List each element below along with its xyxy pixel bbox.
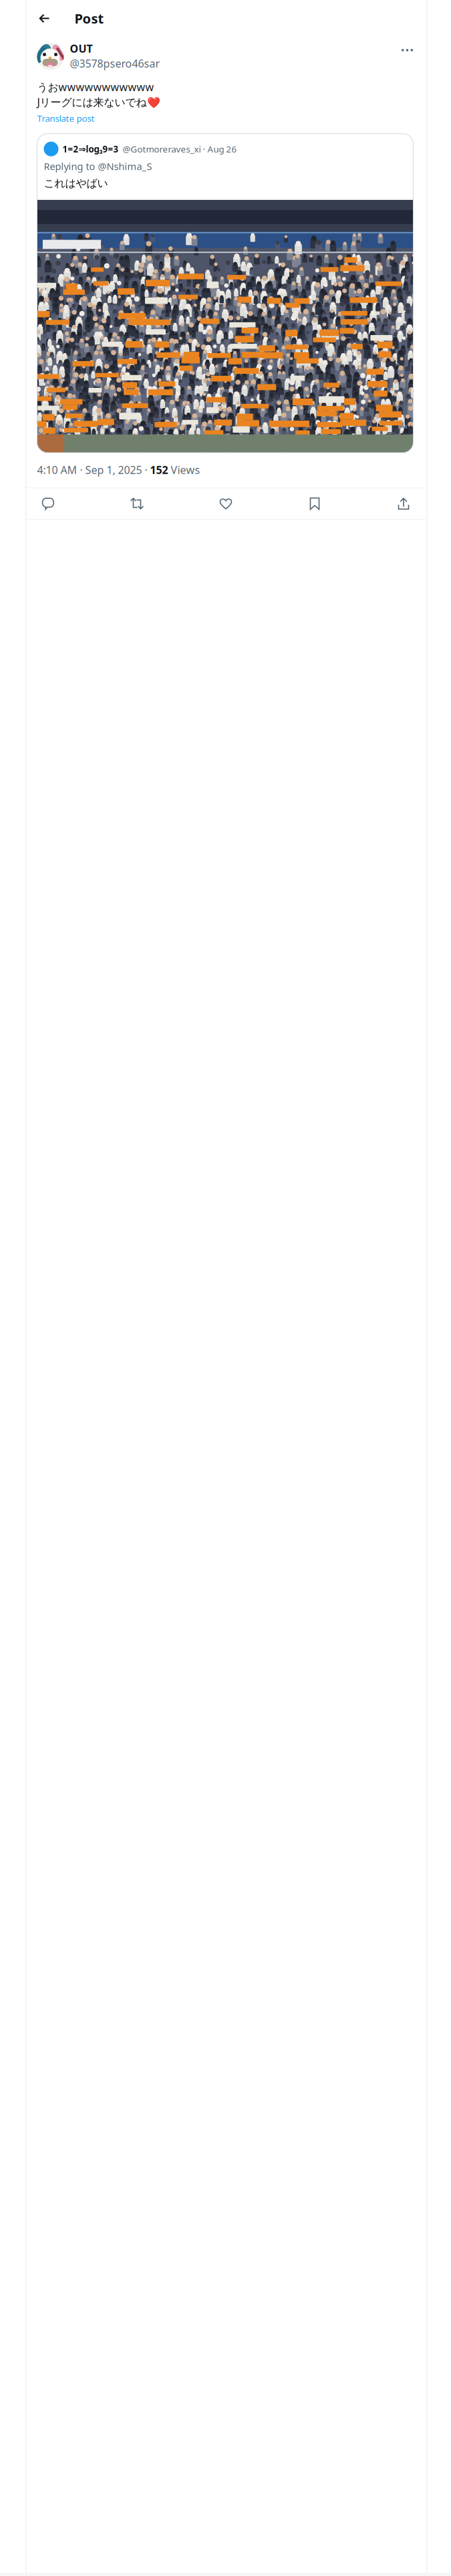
staticText: これはやばい (44, 177, 108, 190)
button[interactable]: Like (205, 488, 247, 519)
staticText: 152 (150, 463, 168, 477)
button[interactable]: Bookmark (294, 488, 336, 519)
button[interactable]: Reply (27, 488, 69, 519)
button[interactable]: Translate post (26, 109, 95, 124)
staticText: OUT (70, 41, 93, 56)
button[interactable]: Back (26, 0, 74, 35)
staticText: @3578psero46sar (70, 56, 160, 70)
staticText: うおwwwwwwwwwww (37, 80, 154, 94)
staticText: 4:10 AM · Sep 1, 2025 · (37, 463, 150, 477)
staticText: Jリーグには来ないでね❤️ (37, 95, 160, 109)
button[interactable]: Share (383, 488, 425, 519)
staticText: Replying to @Nshima_S (44, 160, 152, 173)
staticText: Views (168, 463, 200, 477)
button[interactable]: More (397, 40, 417, 60)
staticText: 1=2⇒log₃9=3 (62, 143, 119, 155)
staticText: Translate post (37, 112, 95, 124)
staticText: Post (74, 9, 104, 27)
staticText: @Gotmoreraves_xi · Aug 26 (123, 143, 237, 155)
button[interactable]: Repost (116, 488, 158, 519)
